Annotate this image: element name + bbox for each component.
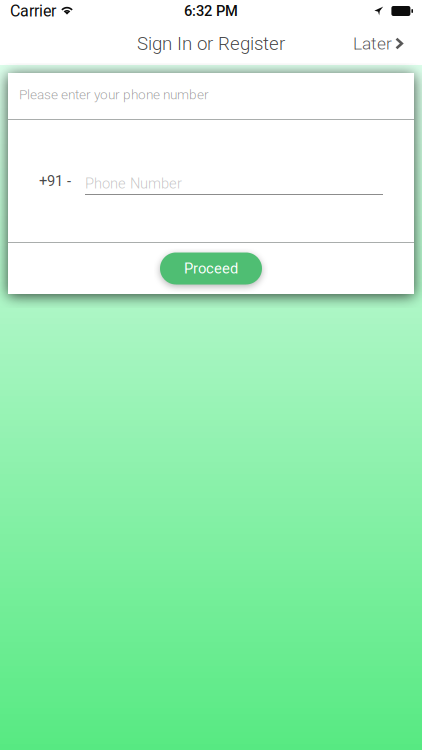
staticText: Carrier [10, 2, 56, 20]
staticText: Later [353, 33, 392, 54]
button[interactable]: Later [339, 25, 422, 62]
staticText: Please enter your phone number [19, 86, 209, 102]
staticText: +91 - [39, 172, 71, 190]
button[interactable]: +91 - [8, 120, 414, 242]
staticText: Sign In or Register [137, 33, 285, 54]
staticText: Proceed [184, 260, 238, 277]
button[interactable]: Proceed [160, 252, 262, 284]
staticText: Phone Number [85, 175, 182, 192]
staticText: 6:32 PM [184, 2, 238, 20]
